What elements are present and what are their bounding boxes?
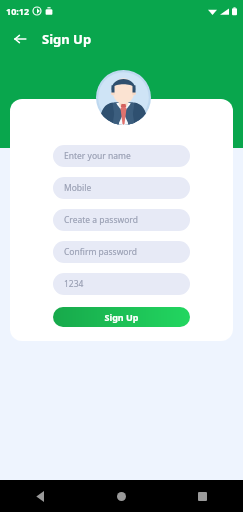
staticText: Mobile xyxy=(64,182,92,194)
button[interactable]: 1234 xyxy=(53,273,190,295)
button[interactable]: Home xyxy=(81,480,162,512)
button[interactable]: Back xyxy=(4,23,36,55)
button[interactable]: Create a password xyxy=(53,209,190,231)
button[interactable]: Confirm password xyxy=(53,241,190,263)
staticText: Create a password xyxy=(64,214,138,226)
staticText: 1234 xyxy=(64,278,84,290)
button[interactable]: Back xyxy=(0,480,81,512)
staticText: Sign Up xyxy=(42,30,92,48)
staticText: 10:12 xyxy=(6,5,30,17)
staticText: Confirm password xyxy=(64,246,138,258)
button[interactable]: Recent apps xyxy=(162,480,243,512)
button[interactable]: Sign Up xyxy=(53,307,190,327)
staticText: Sign Up xyxy=(104,311,139,323)
button[interactable]: Enter your name xyxy=(53,145,190,167)
button[interactable]: Mobile xyxy=(53,177,190,199)
staticText: Enter your name xyxy=(64,150,131,162)
